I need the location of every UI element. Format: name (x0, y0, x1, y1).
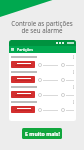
button[interactable]: Option (38, 108, 58, 112)
button[interactable] (11, 91, 35, 98)
button[interactable]: E muito mais! (22, 128, 62, 139)
button[interactable]: More options (73, 70, 74, 74)
button[interactable]: Option (38, 63, 58, 67)
button[interactable]: More options (9, 54, 76, 69)
button[interactable]: More options (9, 84, 76, 99)
button[interactable]: Option (61, 63, 74, 67)
staticText: Partições (17, 47, 33, 52)
button[interactable] (11, 106, 35, 113)
button[interactable]: Option (38, 93, 58, 97)
button[interactable] (11, 76, 35, 83)
button[interactable]: Option (61, 108, 74, 112)
button[interactable]: More options (73, 85, 74, 89)
button[interactable]: Menu (11, 48, 14, 51)
button[interactable]: More options (9, 69, 76, 84)
button[interactable] (11, 61, 35, 68)
staticText: E muito mais! (25, 130, 60, 137)
staticText: Controle as partições de seu alarme (4, 19, 80, 35)
button[interactable]: Option (61, 78, 74, 82)
button[interactable]: Option (61, 93, 74, 97)
button[interactable]: More options (73, 55, 74, 59)
button[interactable]: More options (9, 99, 76, 114)
button[interactable]: Option (38, 78, 58, 82)
button[interactable]: More options (73, 100, 74, 104)
